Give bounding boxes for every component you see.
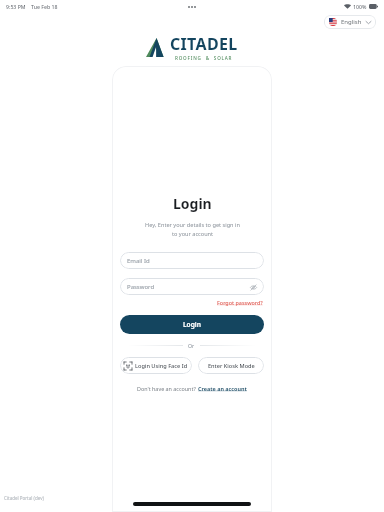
- button[interactable]: Password: [120, 278, 264, 295]
- staticText: Email Id: [127, 257, 257, 265]
- button[interactable]: Forgot password?: [216, 298, 264, 307]
- staticText: 9:53 PM: [6, 3, 26, 10]
- staticText: Password: [127, 283, 249, 291]
- staticText: Login Using Face Id: [135, 362, 188, 370]
- staticText: ROOFING & SOLAR: [175, 55, 233, 61]
- staticText: Or: [188, 342, 195, 349]
- button[interactable]: Login: [120, 315, 264, 334]
- staticText: Tue Feb 18: [31, 3, 58, 10]
- staticText: Don't have an account?: [137, 385, 198, 392]
- button[interactable]: Show password: [249, 283, 257, 291]
- staticText: Login: [173, 194, 212, 213]
- staticText: Login: [183, 320, 201, 329]
- staticText: English: [341, 18, 362, 26]
- staticText: Citadel Portal (dev): [4, 495, 44, 501]
- button[interactable]: English: [324, 15, 376, 29]
- button[interactable]: Create an account: [198, 385, 247, 392]
- button[interactable]: Enter Kiosk Mode: [198, 357, 264, 374]
- button[interactable]: Email Id: [120, 252, 264, 269]
- staticText: CITADEL: [170, 33, 238, 55]
- button[interactable]: Login Using Face Id: [120, 357, 192, 374]
- staticText: Enter Kiosk Mode: [208, 362, 255, 370]
- staticText: Hey, Enter your details to get sign in t…: [145, 221, 240, 238]
- staticText: 100%: [353, 3, 367, 10]
